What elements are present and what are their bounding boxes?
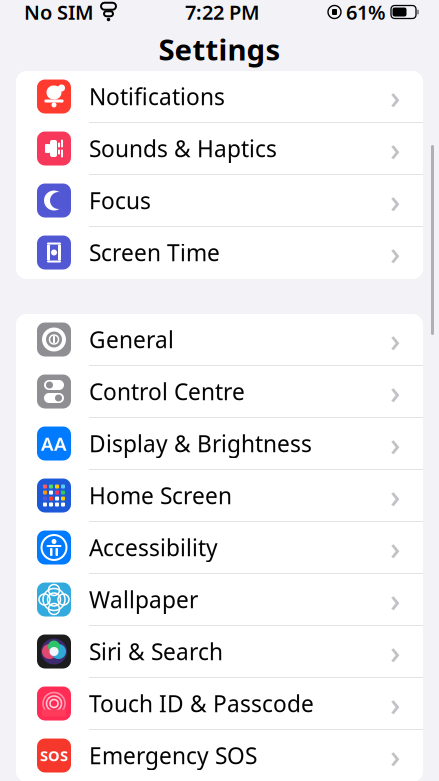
button[interactable]: AA bbox=[16, 418, 423, 470]
button[interactable]: Wallpaper bbox=[16, 574, 423, 626]
staticText: Emergency SOS bbox=[89, 740, 257, 770]
staticText: › bbox=[390, 422, 400, 465]
staticText: › bbox=[390, 179, 400, 222]
staticText: Touch ID & Passcode bbox=[89, 688, 314, 718]
staticText: › bbox=[390, 474, 400, 517]
staticText: › bbox=[390, 75, 400, 118]
staticText: Display & Brightness bbox=[89, 428, 312, 458]
staticText: SOS bbox=[40, 746, 68, 765]
staticText: › bbox=[390, 578, 400, 621]
button[interactable]: Screen Time bbox=[16, 227, 423, 279]
staticText: Accessibility bbox=[89, 532, 218, 562]
button[interactable]: General bbox=[16, 314, 423, 366]
button[interactable]: Siri & Search bbox=[16, 626, 423, 678]
staticText: 61% bbox=[346, 0, 386, 25]
staticText: Screen Time bbox=[89, 237, 220, 267]
staticText: › bbox=[390, 526, 400, 569]
button[interactable]: Home Screen bbox=[16, 470, 423, 522]
staticText: › bbox=[390, 630, 400, 673]
staticText: › bbox=[390, 734, 400, 777]
staticText: › bbox=[390, 682, 400, 725]
staticText: Siri & Search bbox=[89, 636, 223, 666]
button[interactable]: Focus bbox=[16, 175, 423, 227]
staticText: No SIM bbox=[24, 0, 94, 25]
button[interactable]: SOS bbox=[16, 730, 423, 781]
staticText: General bbox=[89, 324, 174, 354]
staticText: Control Centre bbox=[89, 376, 245, 406]
staticText: Sounds & Haptics bbox=[89, 133, 277, 163]
staticText: Wallpaper bbox=[89, 584, 198, 614]
staticText: Focus bbox=[89, 185, 151, 215]
staticText: Notifications bbox=[89, 81, 225, 111]
staticText: › bbox=[390, 127, 400, 170]
button[interactable]: Touch ID & Passcode bbox=[16, 678, 423, 730]
button[interactable]: Control Centre bbox=[16, 366, 423, 418]
staticText: Home Screen bbox=[89, 480, 232, 510]
staticText: › bbox=[390, 370, 400, 413]
button[interactable]: Notifications bbox=[16, 71, 423, 123]
staticText: 7:22 PM bbox=[185, 0, 260, 25]
staticText: › bbox=[390, 231, 400, 274]
staticText: › bbox=[390, 318, 400, 361]
staticText: AA bbox=[41, 431, 67, 456]
button[interactable]: Accessibility bbox=[16, 522, 423, 574]
button[interactable]: Sounds & Haptics bbox=[16, 123, 423, 175]
staticText: Settings bbox=[158, 29, 280, 68]
